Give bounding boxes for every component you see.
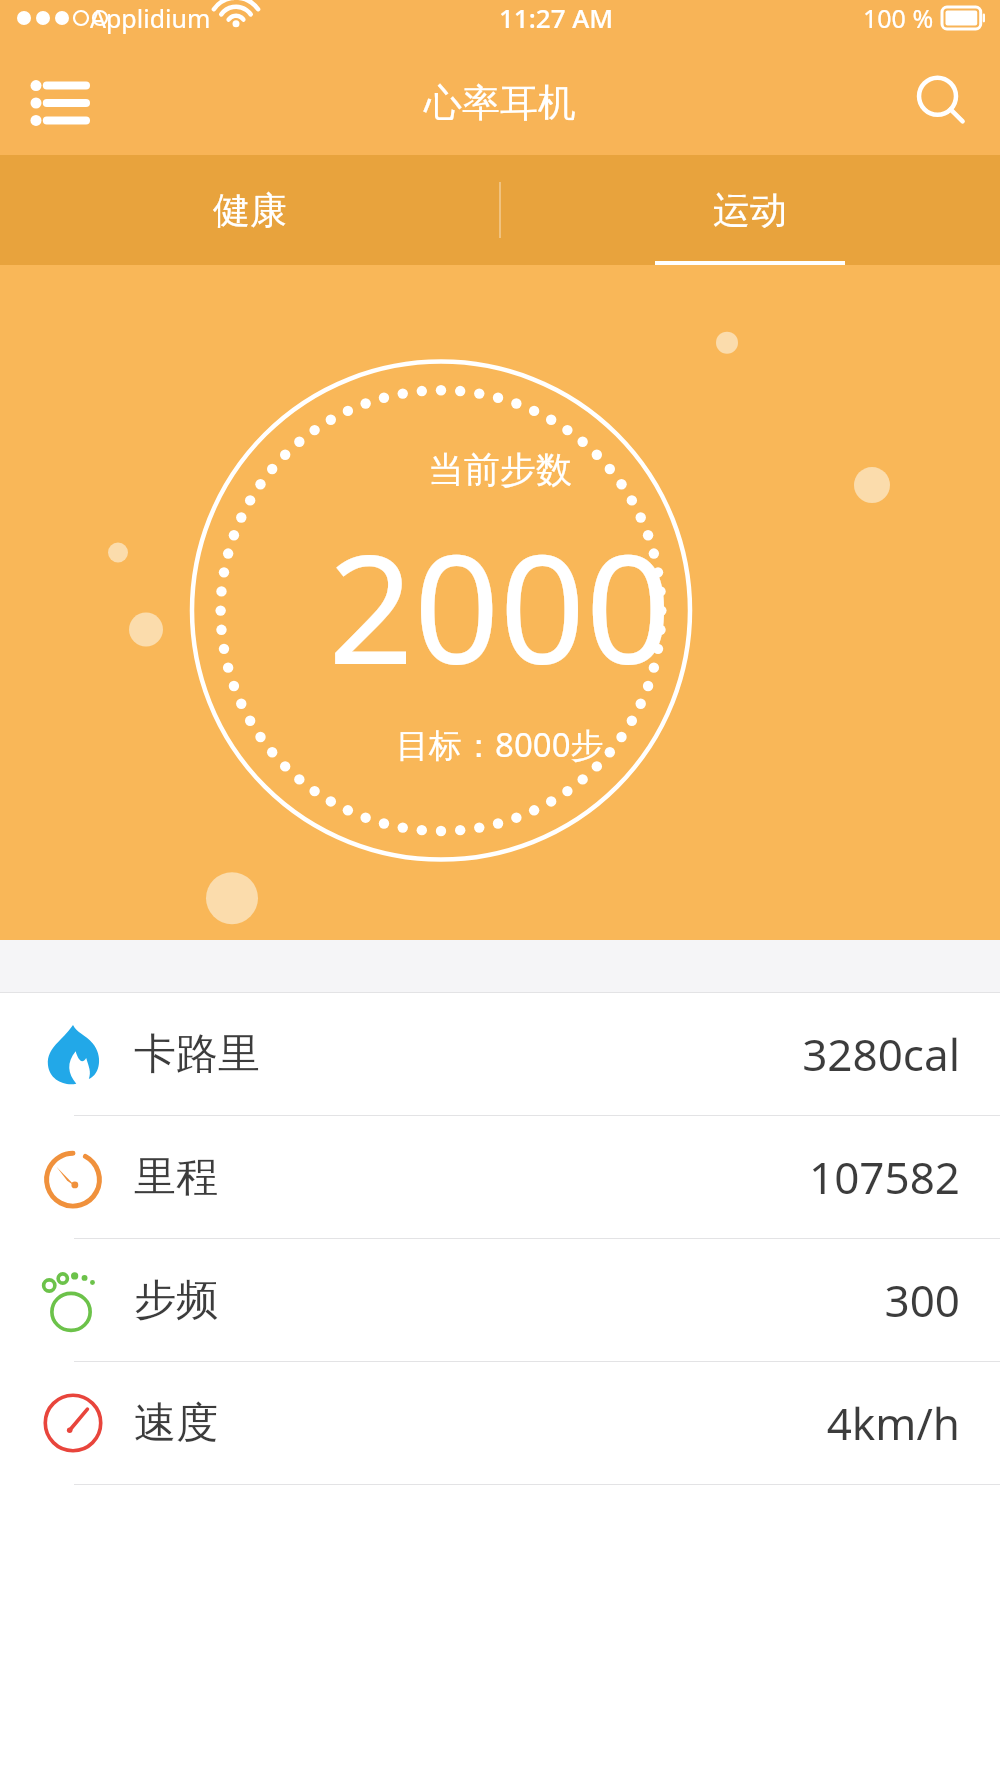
staticText: 卡路里 — [134, 1028, 260, 1081]
staticText: 运动 — [713, 187, 787, 234]
button[interactable]: 速度 — [0, 1362, 1000, 1484]
staticText: Applidium — [90, 1, 211, 35]
staticText: 目标：8000步 — [396, 722, 604, 767]
staticText: 11:27 AM — [499, 0, 614, 35]
staticText: 心率耳机 — [424, 79, 576, 127]
button[interactable]: 健康 — [0, 155, 500, 265]
staticText: 当前步数 — [428, 447, 572, 492]
staticText: 2000 — [328, 504, 672, 708]
staticText: 步频 — [134, 1274, 218, 1327]
staticText: 3280cal — [802, 1024, 960, 1084]
staticText: 速度 — [134, 1397, 218, 1450]
button[interactable]: 步频 — [0, 1239, 1000, 1361]
staticText: 107582 — [808, 1147, 960, 1207]
staticText: 4km/h — [826, 1393, 960, 1453]
button[interactable]: Menu — [18, 63, 98, 143]
button[interactable]: 运动 — [500, 155, 1000, 265]
button[interactable]: 里程 — [0, 1116, 1000, 1238]
button[interactable]: 卡路里 — [0, 993, 1000, 1115]
staticText: 健康 — [213, 187, 287, 234]
button[interactable]: Search — [902, 63, 982, 143]
staticText: 100 % — [863, 1, 934, 35]
staticText: 里程 — [134, 1151, 218, 1204]
staticText: 300 — [884, 1270, 960, 1330]
